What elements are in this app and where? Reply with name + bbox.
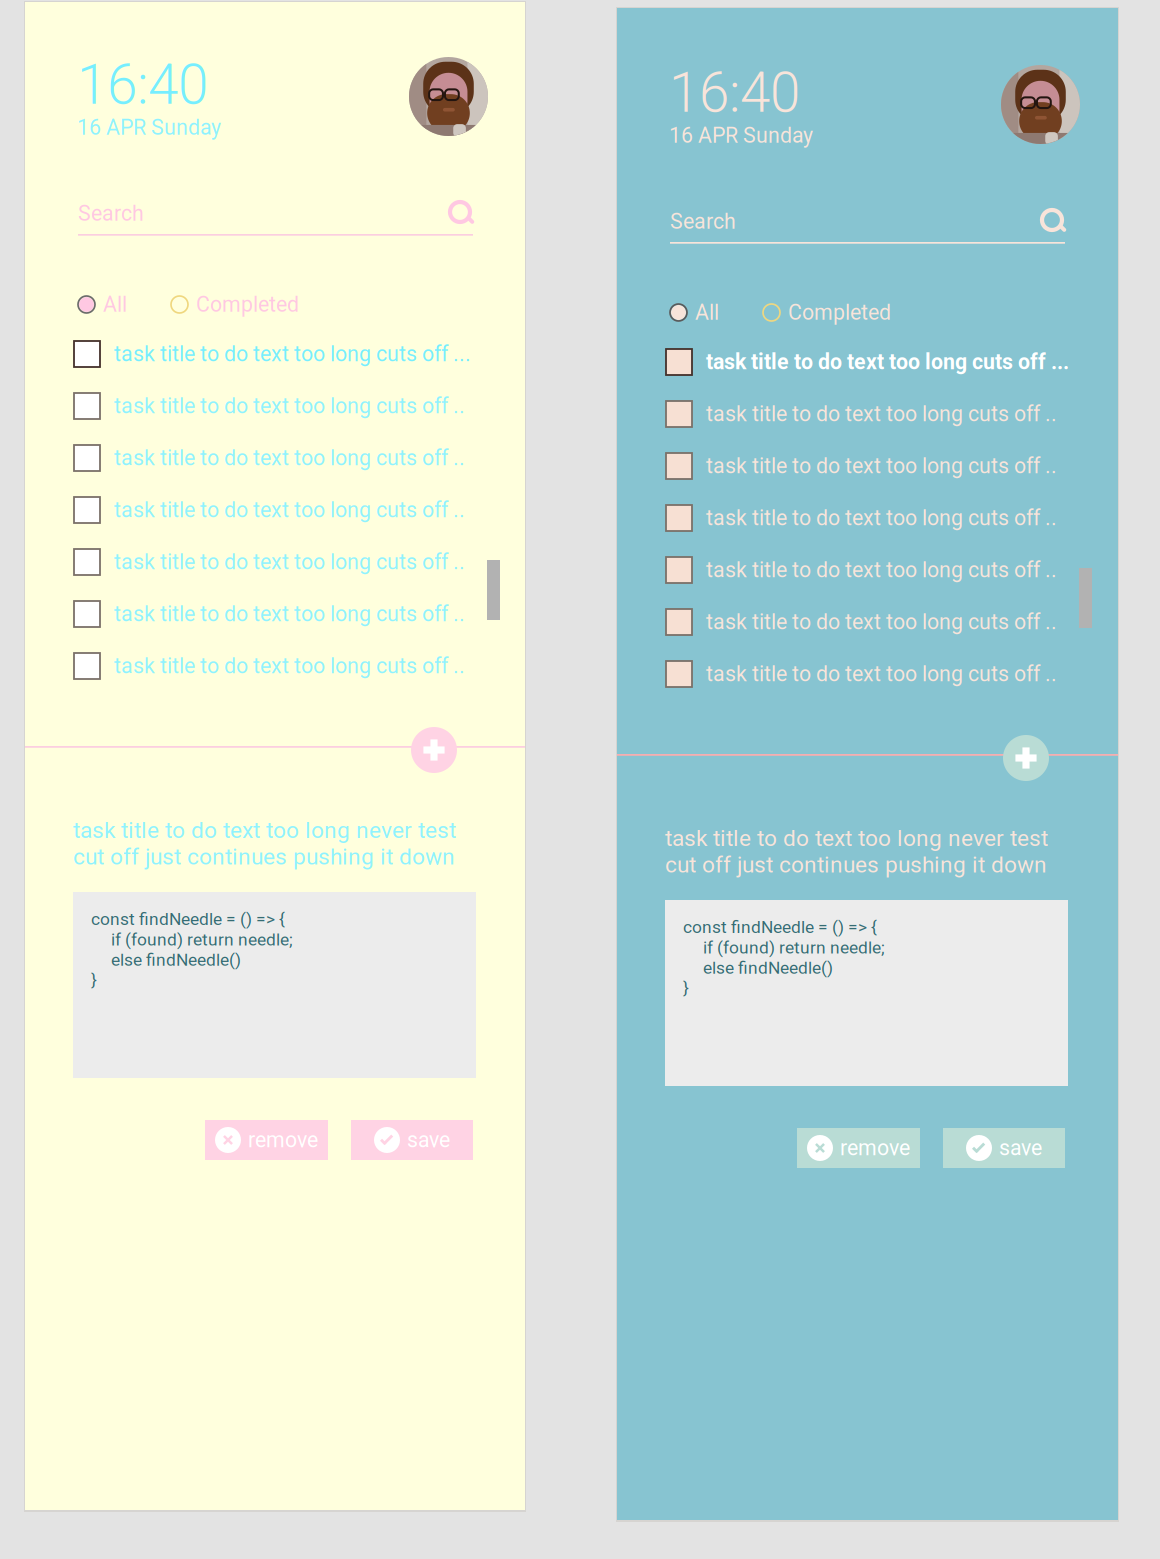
staticText: remove bbox=[840, 1135, 910, 1160]
staticText: task title to do text too long cuts off … bbox=[114, 393, 465, 418]
button[interactable]: remove bbox=[205, 1120, 328, 1160]
staticText: task title to do text too long never tes… bbox=[73, 817, 456, 844]
button[interactable]: task title to do text too long cuts off … bbox=[74, 445, 465, 471]
staticText: save bbox=[407, 1127, 450, 1152]
staticText: remove bbox=[248, 1127, 318, 1152]
staticText: task title to do text too long never tes… bbox=[665, 825, 1048, 852]
button[interactable]: task title to do text too long cuts off … bbox=[666, 401, 1057, 427]
staticText: All bbox=[695, 300, 719, 325]
button[interactable]: task title to do text too long cuts off … bbox=[74, 601, 465, 627]
staticText: task title to do text too long cuts off … bbox=[114, 445, 465, 470]
button[interactable]: Completed bbox=[171, 292, 299, 317]
staticText: task title to do text too long cuts off … bbox=[114, 601, 465, 626]
staticText: const findNeedle = () => { bbox=[683, 917, 877, 937]
button[interactable]: Add task bbox=[1003, 735, 1049, 781]
button[interactable]: task title to do text too long cuts off … bbox=[74, 653, 465, 679]
button[interactable]: task title to do text too long cuts off … bbox=[666, 349, 1069, 375]
staticText: task title to do text too long cuts off … bbox=[706, 349, 1069, 374]
staticText: cut off just continues pushing it down bbox=[73, 844, 455, 870]
button[interactable]: Search bbox=[450, 202, 476, 228]
staticText: const findNeedle = () => { bbox=[91, 909, 285, 929]
button[interactable]: save bbox=[351, 1120, 473, 1160]
button[interactable]: Search bbox=[78, 201, 144, 226]
staticText: task title to do text too long cuts off … bbox=[706, 505, 1057, 530]
staticText: All bbox=[103, 292, 127, 317]
staticText: if (found) return needle; bbox=[91, 929, 293, 950]
button[interactable]: task title to do text too long cuts off … bbox=[666, 609, 1057, 635]
staticText: task title to do text too long cuts off … bbox=[706, 557, 1057, 582]
staticText: } bbox=[91, 970, 97, 990]
button[interactable]: Add task bbox=[411, 727, 457, 773]
button[interactable]: Search bbox=[1042, 210, 1068, 236]
staticText: Completed bbox=[196, 292, 299, 317]
button[interactable]: task title to do text too long cuts off … bbox=[74, 393, 465, 419]
staticText: if (found) return needle; bbox=[683, 937, 885, 958]
button[interactable]: task title to do text too long cuts off … bbox=[666, 505, 1057, 531]
staticText: else findNeedle() bbox=[683, 958, 833, 978]
button[interactable]: task title to do text too long cuts off … bbox=[666, 661, 1057, 687]
staticText: Search bbox=[670, 209, 736, 234]
staticText: 16 APR Sunday bbox=[669, 123, 813, 148]
staticText: else findNeedle() bbox=[91, 950, 241, 970]
button[interactable]: remove bbox=[797, 1128, 920, 1168]
staticText: save bbox=[999, 1135, 1042, 1160]
button[interactable]: task title to do text too long cuts off … bbox=[74, 497, 465, 523]
button[interactable]: task title to do text too long cuts off … bbox=[666, 557, 1057, 583]
staticText: Completed bbox=[788, 300, 891, 325]
button[interactable]: Search bbox=[670, 209, 736, 234]
staticText: task title to do text too long cuts off … bbox=[114, 549, 465, 574]
staticText: task title to do text too long cuts off … bbox=[706, 609, 1057, 634]
button[interactable]: All bbox=[670, 300, 719, 325]
staticText: 16:40 bbox=[77, 53, 208, 117]
button[interactable]: task title to do text too long cuts off … bbox=[74, 549, 465, 575]
button[interactable]: save bbox=[943, 1128, 1065, 1168]
staticText: task title to do text too long cuts off … bbox=[114, 653, 465, 678]
staticText: Search bbox=[78, 201, 144, 226]
staticText: 16 APR Sunday bbox=[77, 115, 221, 140]
button[interactable]: task title to do text too long cuts off … bbox=[666, 453, 1057, 479]
staticText: task title to do text too long cuts off … bbox=[706, 453, 1057, 478]
button[interactable]: All bbox=[78, 292, 127, 317]
button[interactable]: Completed bbox=[763, 300, 891, 325]
staticText: task title to do text too long cuts off … bbox=[114, 341, 471, 366]
staticText: cut off just continues pushing it down bbox=[665, 852, 1047, 878]
staticText: task title to do text too long cuts off … bbox=[706, 661, 1057, 686]
staticText: task title to do text too long cuts off … bbox=[706, 401, 1057, 426]
staticText: } bbox=[683, 978, 689, 998]
staticText: task title to do text too long cuts off … bbox=[114, 497, 465, 522]
button[interactable]: task title to do text too long cuts off … bbox=[74, 341, 471, 367]
staticText: 16:40 bbox=[669, 61, 800, 125]
